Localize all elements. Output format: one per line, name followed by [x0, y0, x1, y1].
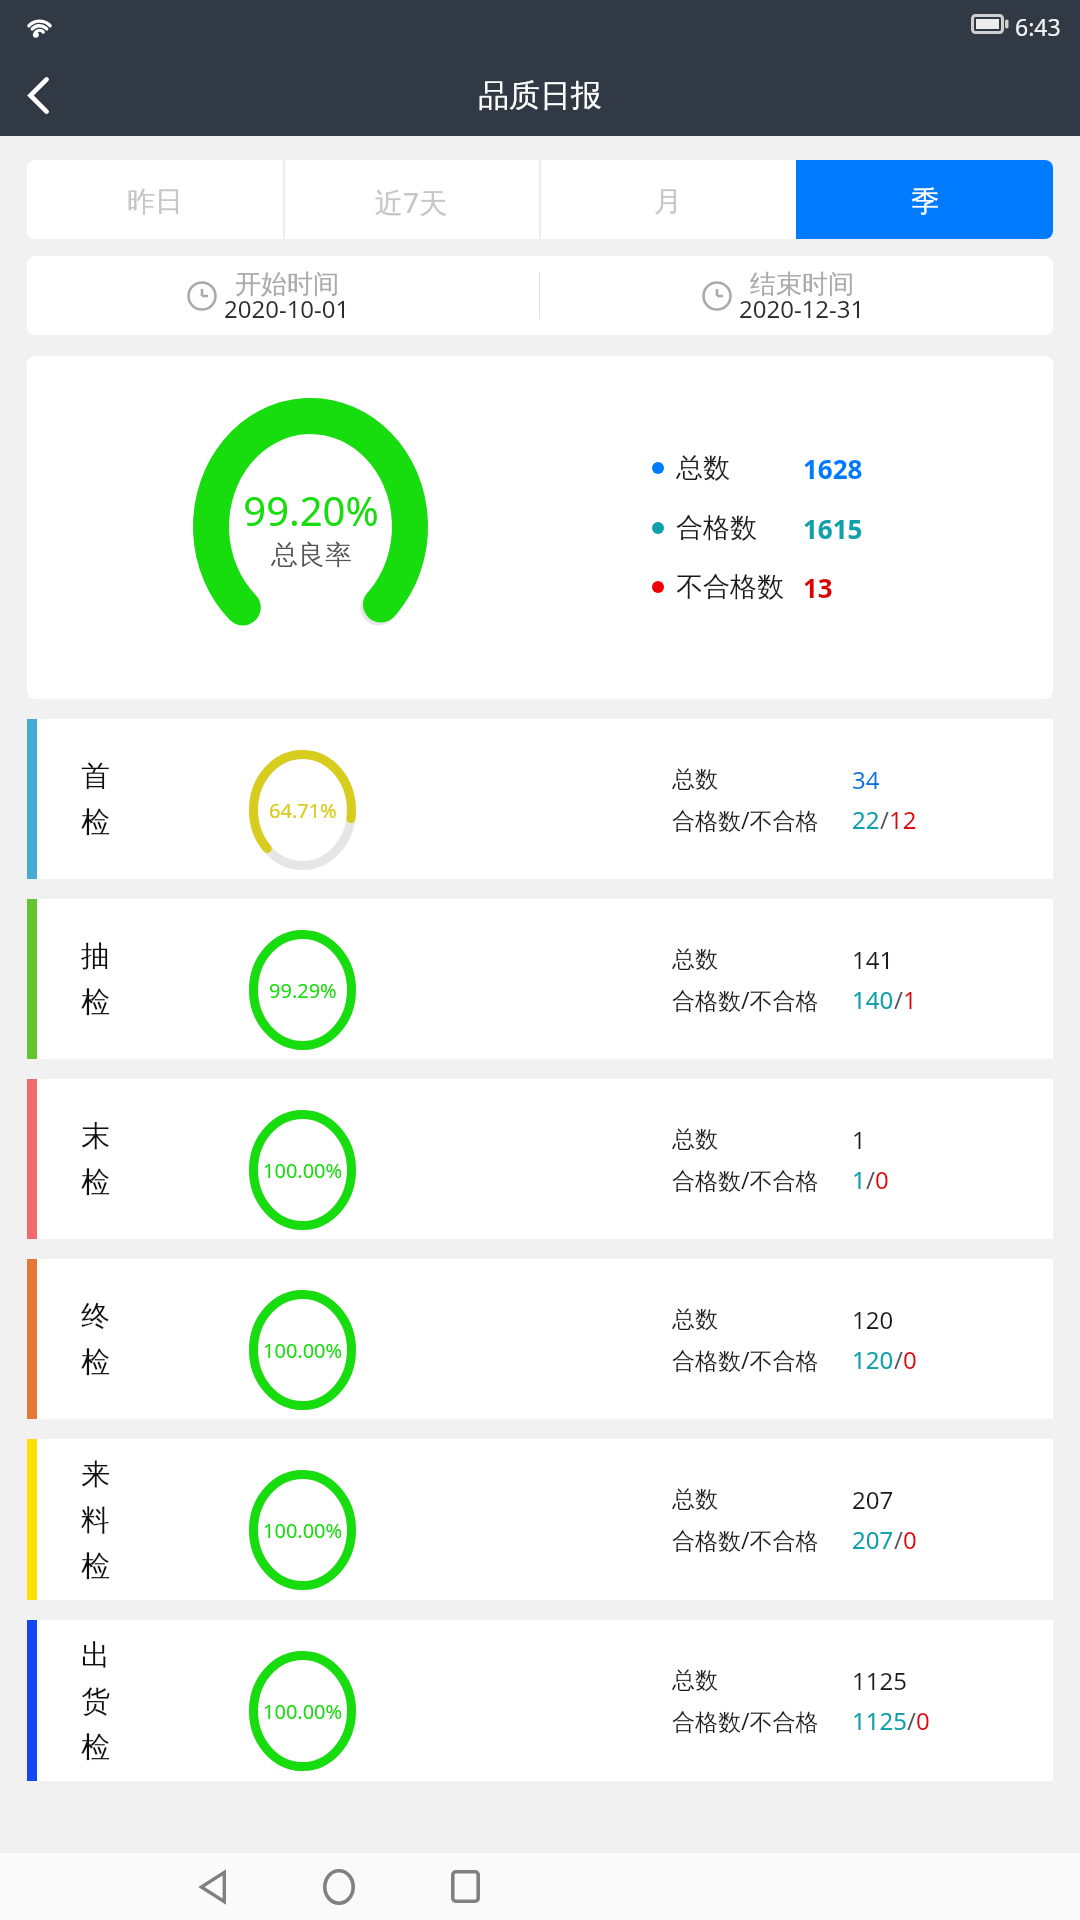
staticText: 141: [852, 943, 894, 976]
staticText: 合格数/不合格: [672, 804, 819, 835]
staticText: 总数: [672, 1305, 718, 1334]
staticText: 1615: [803, 511, 863, 546]
staticText: 首: [81, 758, 110, 795]
staticText: 207: [852, 1523, 894, 1556]
button[interactable]: Back: [0, 55, 76, 136]
staticText: 总数: [672, 945, 718, 974]
staticText: 合格数/不合格: [672, 1344, 819, 1375]
button[interactable]: 昨日: [27, 160, 283, 239]
button[interactable]: Recents: [420, 1853, 510, 1920]
staticText: 0: [875, 1163, 889, 1196]
staticText: 合格数/不合格: [672, 1705, 819, 1736]
staticText: 0: [903, 1523, 917, 1556]
button[interactable]: 首: [27, 719, 1053, 879]
staticText: 昨日: [127, 184, 183, 219]
staticText: 结束时间: [750, 268, 854, 301]
button[interactable]: 开始时间: [178, 256, 396, 335]
staticText: 料: [81, 1502, 110, 1539]
staticText: 货: [81, 1683, 110, 1720]
staticText: 207: [852, 1483, 894, 1516]
staticText: 检: [81, 804, 110, 841]
staticText: 检: [81, 1344, 110, 1381]
staticText: /: [880, 803, 889, 836]
staticText: 2020-10-01: [224, 292, 350, 325]
staticText: /: [894, 1523, 903, 1556]
staticText: 100.00%: [263, 1698, 343, 1725]
staticText: 终: [81, 1298, 110, 1335]
staticText: 1125: [852, 1704, 907, 1737]
staticText: 末: [81, 1118, 110, 1155]
staticText: 检: [81, 984, 110, 1021]
staticText: 140: [852, 983, 894, 1016]
staticText: 64.71%: [269, 797, 337, 824]
button[interactable]: 结束时间: [693, 256, 911, 335]
button[interactable]: Back: [167, 1853, 257, 1920]
staticText: 1628: [803, 451, 863, 486]
staticText: 合格数/不合格: [672, 1164, 819, 1195]
staticText: 品质日报: [478, 76, 602, 115]
staticText: 总数: [672, 765, 718, 794]
staticText: 合格数/不合格: [672, 984, 819, 1015]
staticText: 1: [903, 983, 917, 1016]
staticText: 12: [889, 803, 917, 836]
button[interactable]: 季: [796, 160, 1053, 239]
staticText: 99.20%: [243, 483, 379, 537]
staticText: 检: [81, 1164, 110, 1201]
staticText: /: [907, 1704, 916, 1737]
staticText: /: [866, 1163, 875, 1196]
staticText: 6:43: [1015, 11, 1061, 42]
staticText: 开始时间: [235, 268, 339, 301]
staticText: /: [894, 983, 903, 1016]
staticText: /: [894, 1343, 903, 1376]
staticText: 出: [81, 1637, 110, 1674]
staticText: 1: [852, 1123, 866, 1156]
staticText: 合格数/不合格: [672, 1524, 819, 1555]
staticText: 来: [81, 1456, 110, 1493]
staticText: 不合格数: [676, 570, 784, 604]
staticText: 100.00%: [263, 1517, 343, 1544]
button[interactable]: Home: [294, 1853, 384, 1920]
staticText: 34: [852, 763, 880, 796]
staticText: 1125: [852, 1664, 907, 1697]
staticText: 总良率: [271, 538, 352, 572]
button[interactable]: 月: [539, 160, 796, 239]
staticText: 总数: [676, 451, 730, 485]
staticText: 月: [654, 184, 682, 219]
staticText: 总数: [672, 1666, 718, 1695]
staticText: 13: [803, 570, 833, 605]
staticText: 0: [916, 1704, 930, 1737]
staticText: 合格数: [676, 511, 757, 545]
button[interactable]: 出: [27, 1620, 1053, 1781]
staticText: 1: [852, 1163, 866, 1196]
staticText: 2020-12-31: [739, 292, 865, 325]
staticText: 总数: [672, 1125, 718, 1154]
staticText: 100.00%: [263, 1157, 343, 1184]
staticText: 120: [852, 1343, 894, 1376]
button[interactable]: 末: [27, 1079, 1053, 1239]
staticText: 近7天: [375, 183, 448, 221]
button[interactable]: 近7天: [283, 160, 539, 239]
button[interactable]: 终: [27, 1259, 1053, 1419]
staticText: 抽: [81, 938, 110, 975]
staticText: 22: [852, 803, 880, 836]
staticText: 120: [852, 1303, 894, 1336]
staticText: 检: [81, 1548, 110, 1585]
staticText: 0: [903, 1343, 917, 1376]
button[interactable]: 来: [27, 1439, 1053, 1600]
staticText: 总数: [672, 1485, 718, 1514]
staticText: 99.29%: [269, 977, 337, 1004]
staticText: 检: [81, 1729, 110, 1766]
staticText: 100.00%: [263, 1337, 343, 1364]
staticText: 季: [911, 184, 939, 219]
button[interactable]: 抽: [27, 899, 1053, 1059]
